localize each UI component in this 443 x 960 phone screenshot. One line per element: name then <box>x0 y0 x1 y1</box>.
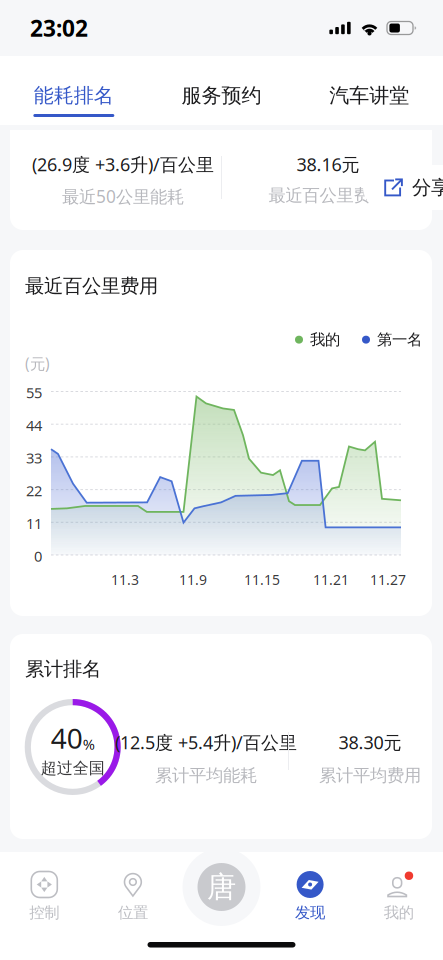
staticText: 0 <box>34 546 42 566</box>
staticText: 能耗排名 <box>34 83 114 108</box>
staticText: 最近百公里费用 <box>268 184 387 206</box>
staticText: 位置 <box>118 903 148 922</box>
button[interactable]: 能耗排名 <box>0 56 148 125</box>
button[interactable]: 我的 <box>354 852 443 960</box>
staticText: (元) <box>25 353 50 374</box>
button[interactable]: 分享 <box>363 165 443 210</box>
staticText: 11.3 <box>111 570 139 589</box>
staticText: 我的 <box>384 903 414 922</box>
staticText: (26.9度 +3.6升)/百公里 <box>32 152 214 176</box>
staticText: 38.16元 <box>296 152 359 176</box>
staticText: 最近百公里费用 <box>25 274 158 298</box>
staticText: 发现 <box>295 903 325 922</box>
staticText: (12.5度 +5.4升)/百公里 <box>115 730 297 754</box>
staticText: 累计排名 <box>25 657 101 681</box>
staticText: 最近50公里能耗 <box>62 184 184 208</box>
button[interactable]: 控制 <box>0 852 89 960</box>
button[interactable]: 发现 <box>266 852 354 960</box>
staticText: 11.15 <box>244 570 280 589</box>
staticText: 超过全国 <box>41 758 105 778</box>
staticText: 11.9 <box>179 570 207 589</box>
staticText: 44 <box>26 415 42 435</box>
staticText: 累计平均能耗 <box>155 764 257 786</box>
staticText: 服务预约 <box>181 83 261 108</box>
staticText: 11 <box>26 513 42 533</box>
staticText: 控制 <box>29 903 59 922</box>
staticText: 40 <box>51 719 83 757</box>
staticText: 唐 <box>207 868 236 905</box>
staticText: % <box>83 734 95 754</box>
staticText: 22 <box>26 481 42 501</box>
button[interactable]: 位置 <box>89 852 177 960</box>
staticText: 11.21 <box>313 570 349 589</box>
staticText: 11.27 <box>370 570 406 589</box>
button[interactable]: 汽车讲堂 <box>295 56 443 125</box>
button[interactable]: 服务预约 <box>148 56 295 125</box>
staticText: 汽车讲堂 <box>329 83 409 108</box>
staticText: 38.30元 <box>338 730 401 754</box>
staticText: 55 <box>26 382 42 402</box>
staticText: 第一名 <box>377 330 422 349</box>
staticText: 33 <box>26 448 42 468</box>
staticText: 累计平均费用 <box>319 764 421 786</box>
button[interactable]: 唐 <box>193 859 249 915</box>
staticText: 我的 <box>310 330 340 349</box>
staticText: 分享 <box>412 175 443 200</box>
staticText: 23:02 <box>30 13 88 43</box>
